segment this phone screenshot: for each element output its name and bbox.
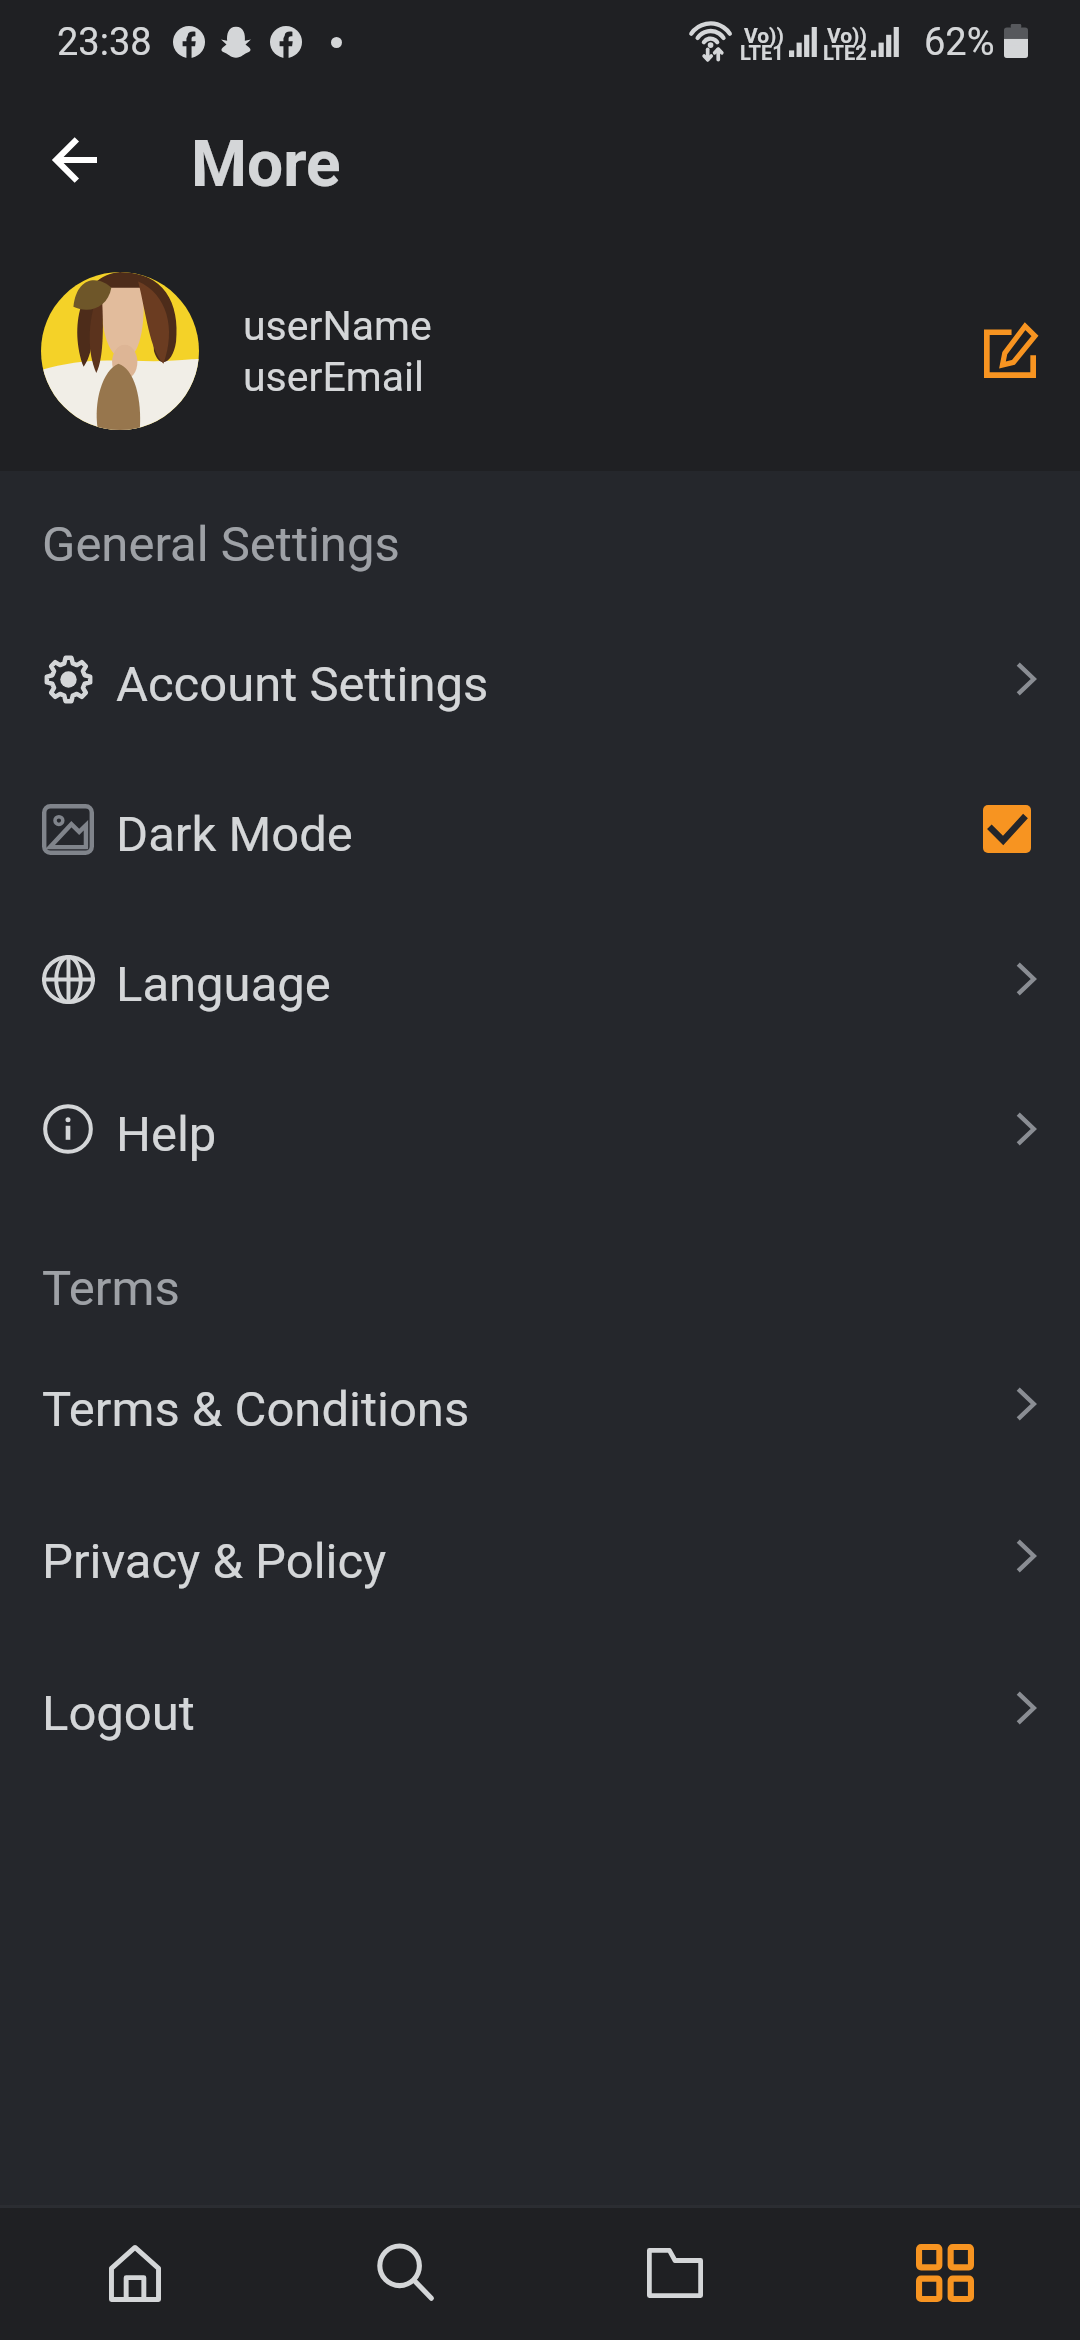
staticText: Language (116, 956, 331, 1013)
staticText: General Settings (42, 516, 400, 573)
staticText: Help (116, 1106, 217, 1163)
button[interactable]: Search (270, 2208, 540, 2340)
staticText: 62% (924, 20, 995, 65)
staticText: Logout (42, 1685, 195, 1742)
staticText: Privacy & Policy (42, 1533, 387, 1590)
button[interactable]: Back (15, 105, 135, 215)
button[interactable]: Terms & Conditions (0, 1329, 1080, 1479)
staticText: LTE1 (740, 41, 784, 64)
staticText: More (191, 127, 341, 202)
button[interactable]: userName (0, 261, 1080, 441)
button[interactable]: Home (0, 2208, 270, 2340)
button[interactable]: Dark Mode (0, 754, 1080, 904)
staticText: Terms & Conditions (42, 1381, 470, 1438)
staticText: Account Settings (116, 656, 489, 713)
button[interactable]: Edit profile (955, 296, 1065, 406)
button[interactable]: Help (0, 1054, 1080, 1204)
button[interactable]: Account Settings (0, 604, 1080, 754)
staticText: Dark Mode (116, 806, 353, 863)
button[interactable]: Logout (0, 1633, 1080, 1783)
staticText: userName (243, 302, 432, 350)
staticText: Vo)) (827, 24, 867, 49)
staticText: LTE2 (823, 41, 867, 64)
staticText: Terms (42, 1260, 180, 1317)
staticText: 23:38 (57, 20, 152, 65)
button[interactable]: Privacy & Policy (0, 1481, 1080, 1631)
button[interactable]: More (810, 2208, 1080, 2340)
staticText: userEmail (243, 353, 424, 401)
staticText: Vo)) (744, 24, 784, 49)
button[interactable]: Language (0, 904, 1080, 1054)
button[interactable]: Dark mode toggle (983, 805, 1031, 853)
button[interactable]: Files (540, 2208, 810, 2340)
